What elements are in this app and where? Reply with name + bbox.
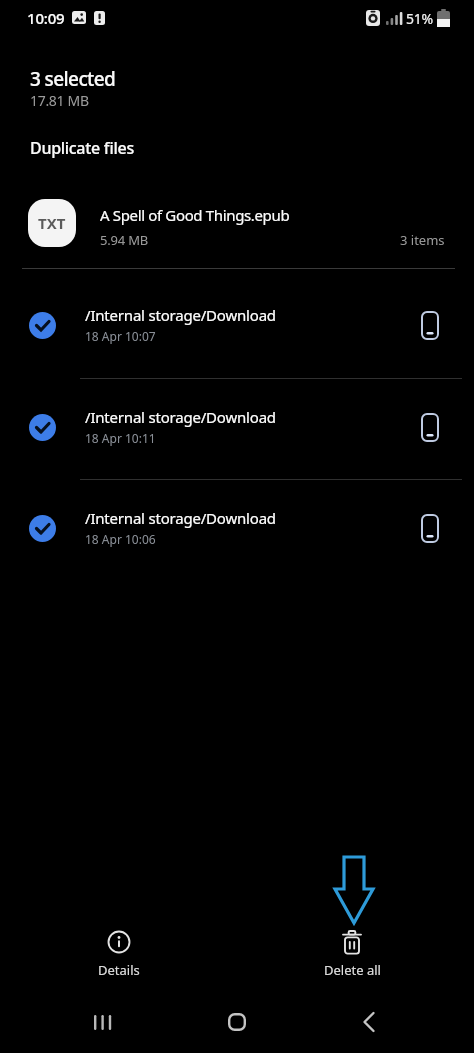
staticText: Duplicate files bbox=[30, 137, 134, 159]
button[interactable]: Delete all bbox=[312, 922, 392, 992]
button[interactable] bbox=[0, 190, 474, 268]
button[interactable]: /Internal storage/Download bbox=[0, 275, 474, 376]
staticText: Details bbox=[98, 961, 140, 979]
staticText: A Spell of Good Things.epub bbox=[100, 205, 290, 225]
staticText: 3 selected bbox=[30, 66, 116, 92]
staticText: 5.94 MB bbox=[100, 231, 149, 249]
staticText: 18 Apr 10:07 bbox=[85, 328, 156, 344]
button[interactable]: Details bbox=[79, 922, 159, 992]
staticText: 18 Apr 10:11 bbox=[85, 430, 156, 446]
staticText: /Internal storage/Download bbox=[85, 407, 276, 427]
button[interactable] bbox=[79, 998, 127, 1046]
button[interactable] bbox=[213, 998, 261, 1046]
staticText: 3 items bbox=[400, 231, 445, 249]
staticText: 18 Apr 10:06 bbox=[85, 531, 156, 547]
staticText: /Internal storage/Download bbox=[85, 305, 276, 325]
staticText: 10:09 bbox=[27, 8, 65, 28]
staticText: 51% bbox=[406, 9, 434, 28]
button[interactable]: /Internal storage/Download bbox=[0, 478, 474, 579]
button[interactable] bbox=[345, 998, 393, 1046]
button[interactable]: /Internal storage/Download bbox=[0, 377, 474, 478]
staticText: Delete all bbox=[324, 961, 381, 979]
staticText: 17.81 MB bbox=[30, 91, 89, 110]
staticText: /Internal storage/Download bbox=[85, 508, 276, 528]
staticText: TXT bbox=[38, 213, 66, 233]
